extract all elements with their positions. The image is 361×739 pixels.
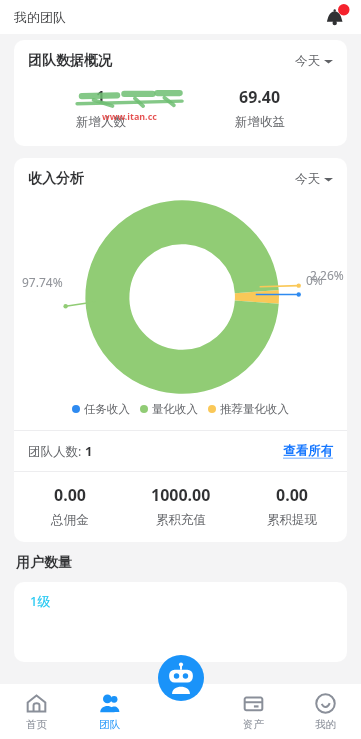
button[interactable]: 查看所有 bbox=[283, 443, 333, 459]
staticText: 69.40 bbox=[239, 86, 281, 108]
staticText: 1 bbox=[85, 442, 93, 460]
button[interactable]: AI 助手 bbox=[158, 655, 204, 701]
button[interactable]: 团队 bbox=[73, 684, 145, 739]
staticText: 我的 bbox=[315, 718, 336, 731]
staticText: 2.26% bbox=[310, 267, 344, 283]
staticText: 0.00 bbox=[276, 484, 308, 506]
button[interactable]: 今天 bbox=[295, 53, 333, 69]
staticText: www.itan.cc bbox=[102, 110, 157, 122]
staticText: 今天 bbox=[295, 53, 320, 69]
staticText: 1 bbox=[96, 86, 106, 108]
staticText: 首页 bbox=[26, 718, 47, 731]
staticText: 0.00 bbox=[54, 484, 86, 506]
staticText: 1级 bbox=[30, 592, 51, 610]
button[interactable]: 资产 bbox=[217, 684, 289, 739]
staticText: 团队 bbox=[99, 718, 120, 731]
staticText: 量化收入 bbox=[152, 402, 198, 416]
staticText: 累积充值 bbox=[156, 512, 206, 528]
button[interactable]: 通知 bbox=[323, 4, 349, 30]
button[interactable]: 今天 bbox=[295, 171, 333, 187]
staticText: 今天 bbox=[295, 171, 320, 187]
staticText: 我的团队 bbox=[14, 9, 66, 25]
staticText: 总佣金 bbox=[51, 512, 89, 528]
staticText: 任务收入 bbox=[84, 402, 130, 416]
staticText: 新增收益 bbox=[235, 114, 285, 130]
button[interactable]: 首页 bbox=[0, 684, 73, 739]
staticText: 资产 bbox=[243, 718, 264, 731]
staticText: 0% bbox=[306, 272, 323, 288]
staticText: 用户数量 bbox=[16, 554, 72, 572]
staticText: 97.74% bbox=[22, 274, 63, 290]
staticText: 团队人数: bbox=[28, 443, 85, 460]
staticText: 新增人数 bbox=[76, 114, 126, 130]
staticText: 推荐量化收入 bbox=[220, 402, 289, 416]
staticText: 1000.00 bbox=[151, 484, 211, 506]
staticText: 收入分析 bbox=[28, 170, 84, 188]
staticText: 团队数据概况 bbox=[28, 52, 112, 70]
button[interactable]: 我的 bbox=[289, 684, 361, 739]
staticText: 查看所有 bbox=[283, 443, 333, 459]
staticText: 累积提现 bbox=[267, 512, 317, 528]
